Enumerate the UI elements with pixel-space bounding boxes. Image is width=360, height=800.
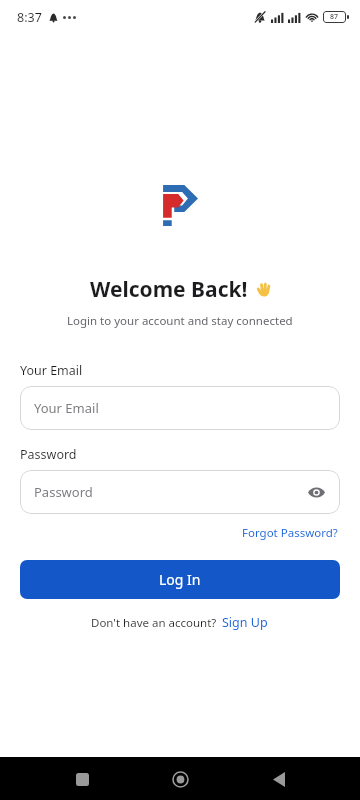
- button[interactable]: Forgot Password?: [240, 523, 340, 543]
- button[interactable]: Log In: [20, 560, 340, 599]
- staticText: Welcome Back!: [90, 275, 248, 304]
- staticText: Sign Up: [222, 614, 268, 631]
- button[interactable]: Your Email: [20, 386, 340, 430]
- staticText: Don't have an account?: [91, 615, 217, 631]
- button[interactable]: Show password: [305, 481, 327, 503]
- staticText: Your Email: [20, 362, 83, 379]
- staticText: Login to your account and stay connected: [67, 313, 293, 329]
- staticText: Password: [20, 446, 77, 463]
- staticText: Your Email: [34, 399, 99, 417]
- button[interactable]: Sign Up: [221, 612, 269, 633]
- button[interactable]: Password: [20, 470, 340, 514]
- staticText: Forgot Password?: [242, 525, 338, 541]
- staticText: Password: [34, 483, 93, 501]
- staticText: 87: [330, 12, 339, 22]
- staticText: 8:37: [17, 9, 42, 26]
- button[interactable]: Back: [262, 762, 296, 796]
- staticText: Log In: [159, 570, 201, 589]
- button[interactable]: Home: [163, 762, 197, 796]
- button[interactable]: Recent apps: [65, 762, 99, 796]
